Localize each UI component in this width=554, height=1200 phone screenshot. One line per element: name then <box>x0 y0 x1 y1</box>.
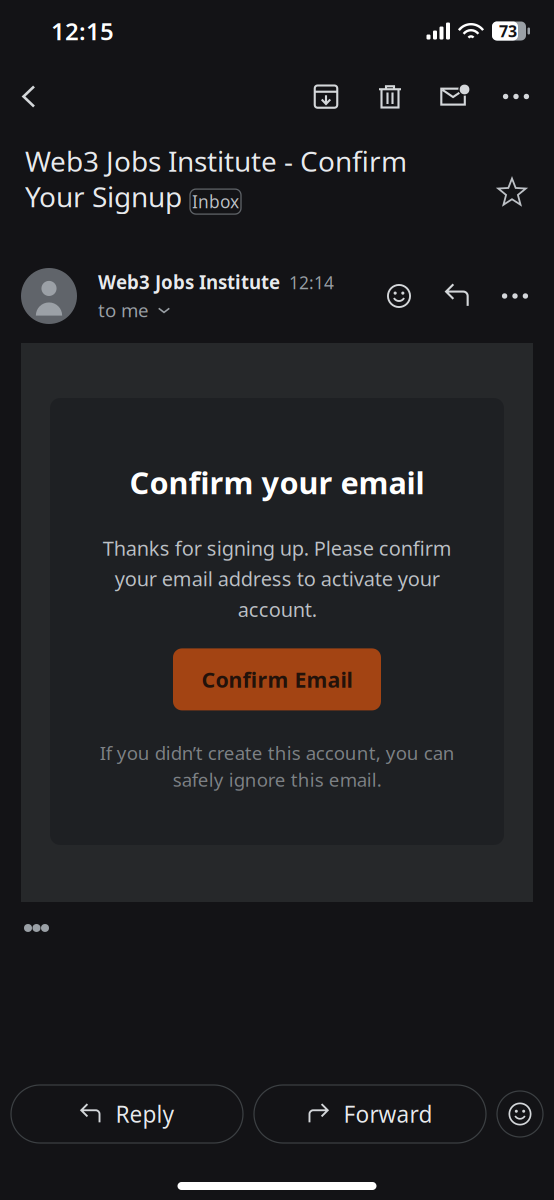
staticText: Reply <box>115 1099 174 1129</box>
staticText: Web3 Jobs Institute <box>98 270 280 294</box>
staticText: 12:14 <box>289 271 334 294</box>
button[interactable]: Star <box>488 146 536 225</box>
button[interactable]: More options <box>487 268 543 324</box>
staticText: 12:15 <box>51 15 114 47</box>
button[interactable]: Archive <box>294 70 358 122</box>
button[interactable]: Show trimmed content <box>16 917 57 939</box>
button[interactable]: Mark as unread <box>422 70 486 122</box>
button[interactable]: Add reaction <box>371 268 427 324</box>
button[interactable]: Forward <box>254 1085 486 1143</box>
staticText: 73 <box>499 20 517 42</box>
staticText: If you didn’t create this account, you c… <box>99 740 454 792</box>
button[interactable]: Add reaction <box>497 1091 543 1137</box>
staticText: Inbox <box>192 190 239 213</box>
staticText: Confirm your email <box>129 462 424 503</box>
button[interactable]: Reply <box>427 268 487 324</box>
button[interactable]: More options <box>486 70 546 122</box>
button[interactable]: Delete <box>358 70 422 122</box>
staticText: Confirm Email <box>201 665 352 693</box>
button[interactable]: Back <box>3 70 55 122</box>
button[interactable]: Confirm Email <box>173 648 381 710</box>
staticText: Web3 Jobs Institute - Confirm <box>25 142 407 180</box>
staticText: Thanks for signing up. Please confirm yo… <box>102 535 451 622</box>
staticText: Your Signup <box>25 178 182 215</box>
button[interactable]: Reply <box>11 1085 243 1143</box>
staticText: to me <box>98 298 149 322</box>
staticText: Forward <box>343 1099 432 1129</box>
